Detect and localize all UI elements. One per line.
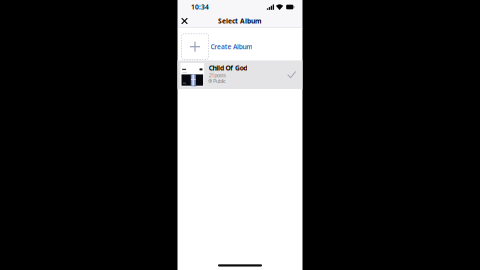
staticText: 10:34: [191, 3, 209, 11]
button[interactable]: Child Of God: [177, 60, 302, 89]
button[interactable]: Create Album: [177, 28, 302, 60]
staticText: Public: [213, 77, 226, 84]
button[interactable]: Close: [178, 14, 191, 28]
staticText: 21 posts: [209, 72, 226, 79]
staticText: Child Of God: [209, 64, 247, 72]
staticText: Create Album: [210, 42, 252, 51]
staticText: Select Album: [218, 17, 262, 25]
